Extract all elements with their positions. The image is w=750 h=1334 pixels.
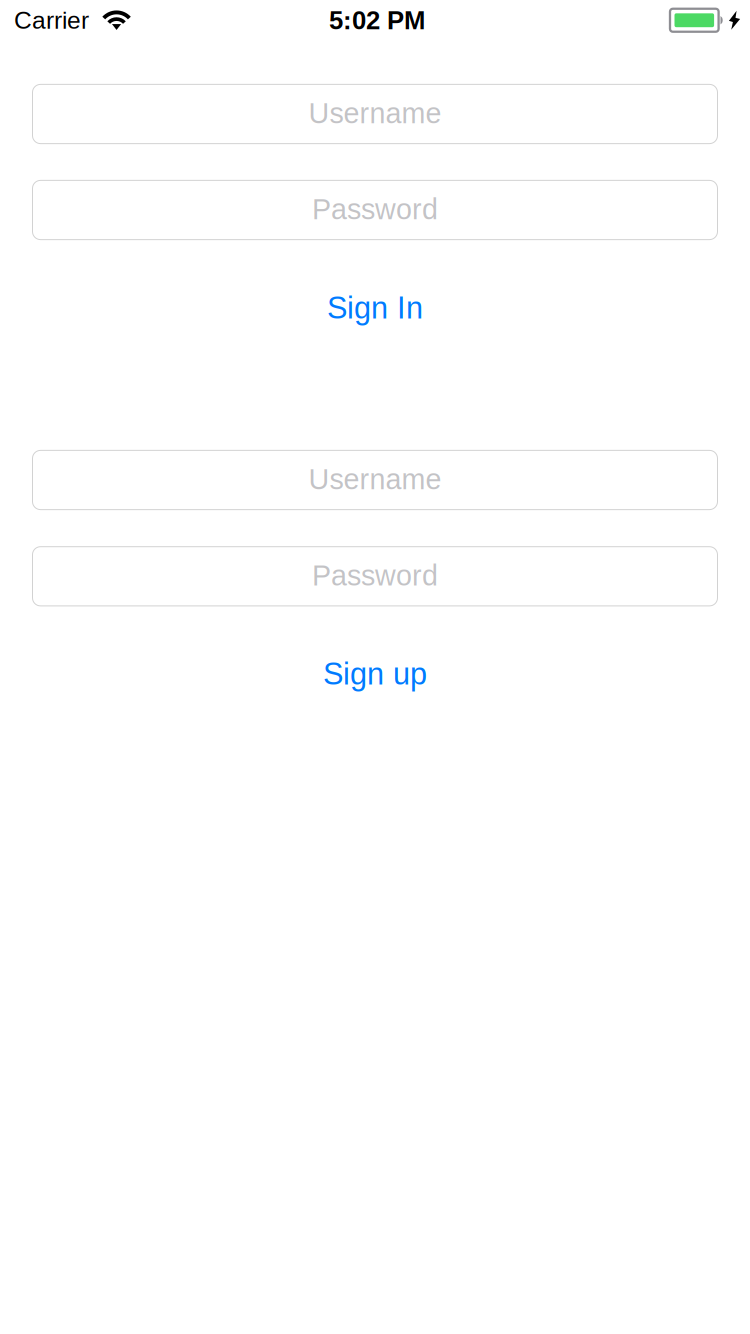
staticText: Username: [308, 97, 441, 129]
staticText: Password: [312, 193, 438, 225]
staticText: Username: [308, 463, 441, 495]
staticText: Password: [312, 560, 438, 592]
secureTextField[interactable]: Password: [32, 547, 717, 606]
textField[interactable]: Username: [32, 450, 717, 510]
secureTextField[interactable]: Password: [32, 180, 717, 240]
button[interactable]: Sign In: [32, 291, 717, 325]
staticText: Sign In: [327, 291, 423, 325]
button[interactable]: Sign up: [32, 657, 717, 691]
staticText: 5:02 PM: [329, 6, 425, 35]
staticText: Carrier: [14, 6, 89, 34]
staticText: Sign up: [323, 657, 427, 691]
textField[interactable]: Username: [32, 84, 717, 144]
